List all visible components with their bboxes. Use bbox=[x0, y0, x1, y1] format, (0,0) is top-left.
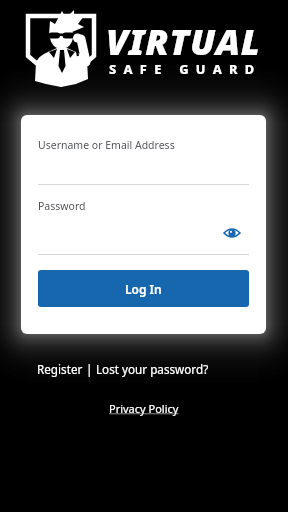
staticText: SAFE GUARD bbox=[109, 60, 262, 77]
staticText: Password bbox=[38, 199, 86, 213]
button[interactable]: Privacy Policy bbox=[109, 401, 179, 416]
button[interactable] bbox=[223, 226, 241, 240]
staticText: VIRTUAL bbox=[106, 17, 261, 66]
button[interactable]: Lost your password? bbox=[96, 361, 209, 377]
staticText: Privacy Policy bbox=[109, 401, 179, 416]
button[interactable]: Username or Email Address bbox=[38, 138, 249, 152]
staticText: Lost your password? bbox=[96, 361, 209, 377]
button[interactable]: Password bbox=[38, 199, 249, 213]
staticText: Register bbox=[37, 361, 83, 377]
staticText: | bbox=[83, 361, 96, 377]
button[interactable]: Register bbox=[37, 361, 83, 377]
staticText: Log In bbox=[125, 281, 162, 297]
staticText: Username or Email Address bbox=[38, 138, 175, 152]
button[interactable]: Log In bbox=[38, 270, 249, 307]
